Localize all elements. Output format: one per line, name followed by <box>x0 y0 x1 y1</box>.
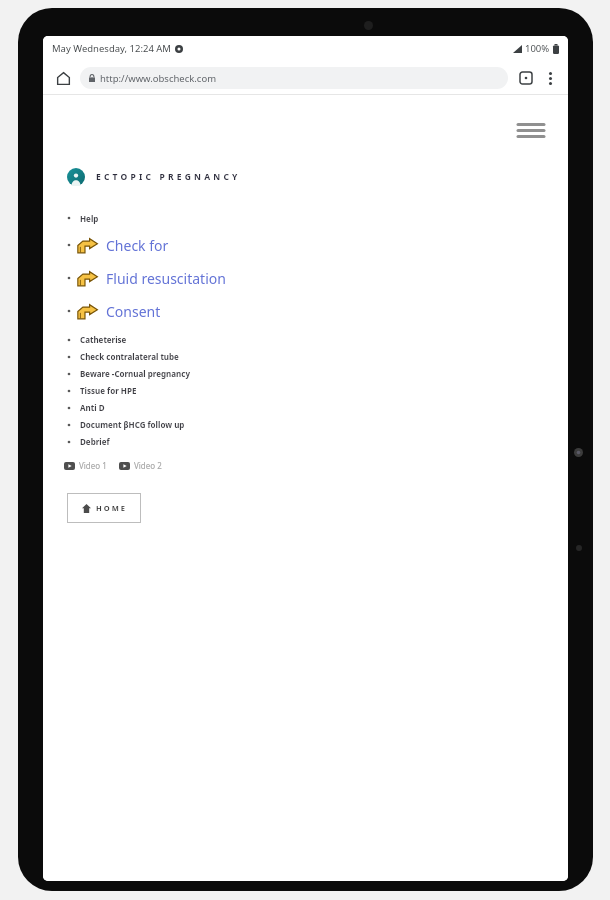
staticText: Video 1 <box>79 460 107 471</box>
button[interactable]: Beware -Cornual pregnancy <box>65 365 568 382</box>
staticText: http://www.obscheck.com <box>100 72 217 85</box>
button[interactable]: Fluid resuscitation <box>65 266 568 290</box>
button[interactable]: Debrief <box>65 433 568 450</box>
staticText: Beware -Cornual pregnancy <box>80 368 190 379</box>
button[interactable]: Help <box>65 210 568 226</box>
staticText: Consent <box>106 302 161 321</box>
staticText: Video 2 <box>134 460 162 471</box>
button[interactable]: Video 2 <box>119 460 162 471</box>
staticText: 100% <box>525 42 550 55</box>
button[interactable]: Video 1 <box>64 460 107 471</box>
staticText: Catheterise <box>80 334 127 345</box>
button[interactable]: Tissue for HPE <box>65 382 568 399</box>
button[interactable]: Consent <box>65 299 568 323</box>
staticText: Check for <box>106 236 169 255</box>
staticText: Tissue for HPE <box>80 385 137 396</box>
button[interactable]: Document βHCG follow up <box>65 416 568 433</box>
staticText: HOME <box>96 503 127 513</box>
button[interactable]: More options <box>540 68 560 88</box>
button[interactable]: HOME <box>67 493 141 523</box>
staticText: Anti D <box>80 402 105 413</box>
button[interactable]: Home <box>51 66 75 90</box>
button[interactable]: Anti D <box>65 399 568 416</box>
button[interactable]: ECTOPIC PREGNANCY <box>67 168 241 186</box>
button[interactable]: Catheterise <box>65 331 568 348</box>
staticText: May Wednesday, 12:24 AM <box>52 42 171 55</box>
staticText: Document βHCG follow up <box>80 419 185 430</box>
staticText: Help <box>80 213 99 224</box>
button[interactable]: Menu <box>514 118 548 142</box>
button[interactable]: Check for <box>65 233 568 257</box>
button[interactable]: Tabs <box>515 67 537 89</box>
staticText: Debrief <box>80 436 110 447</box>
staticText: Check contralateral tube <box>80 351 179 362</box>
button[interactable]: http://www.obscheck.com <box>80 67 508 89</box>
staticText: ECTOPIC PREGNANCY <box>96 171 241 183</box>
staticText: Fluid resuscitation <box>106 269 226 288</box>
button[interactable]: Check contralateral tube <box>65 348 568 365</box>
